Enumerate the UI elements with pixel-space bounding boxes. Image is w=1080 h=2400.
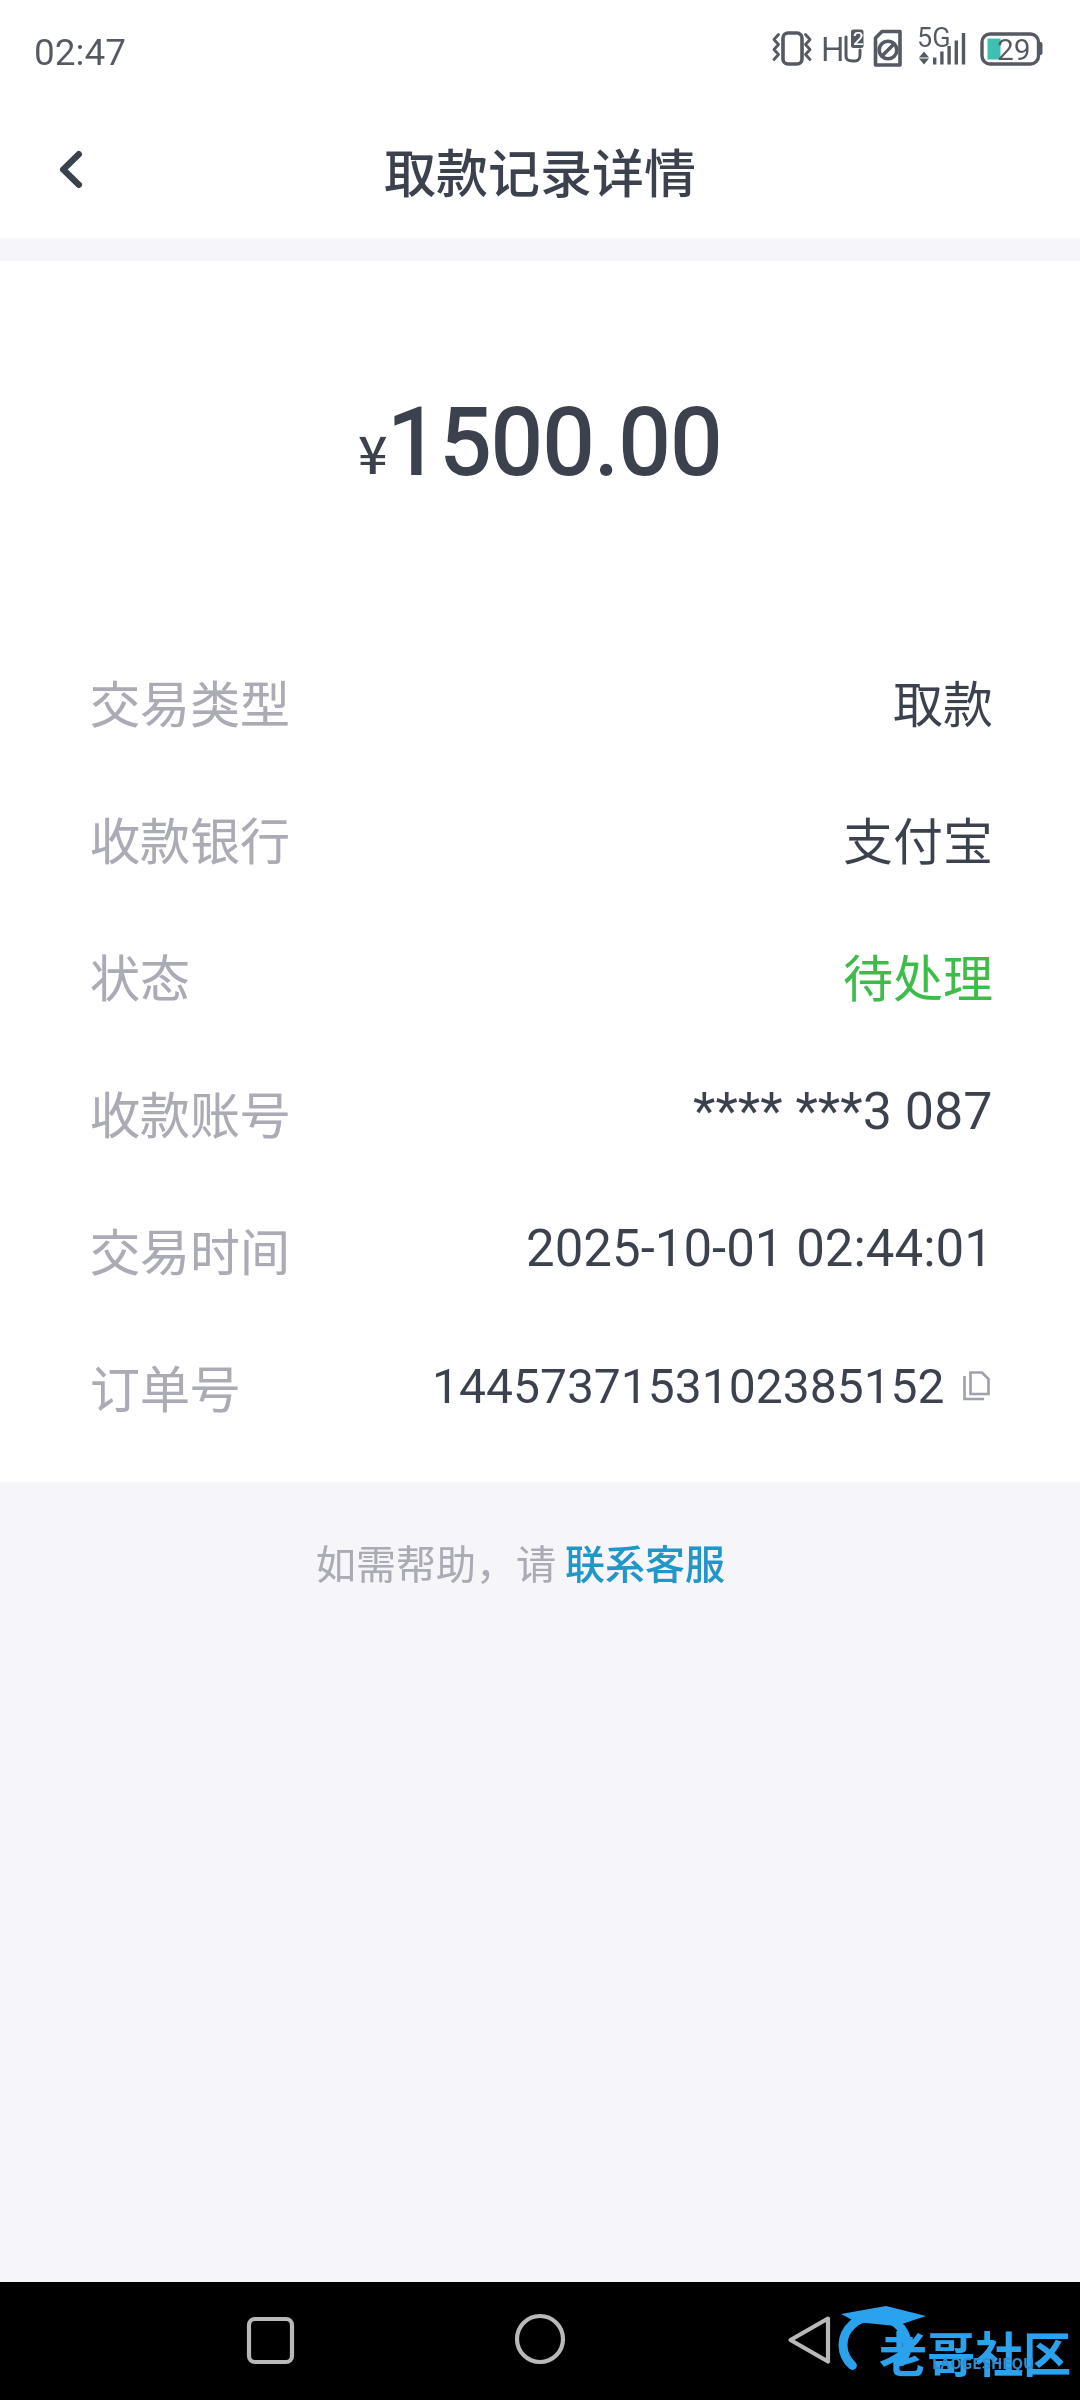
staticText: 2 — [853, 27, 864, 49]
staticText: 收款银行 — [90, 802, 290, 874]
staticText: 29 — [997, 32, 1031, 67]
staticText: 1445737153102385152 — [432, 1358, 945, 1414]
staticText: ¥1500.00 — [358, 389, 723, 497]
staticText: 交易时间 — [90, 1213, 290, 1285]
button[interactable]: 联系客服 — [565, 1533, 725, 1591]
staticText: 取款记录详情 — [384, 133, 697, 208]
button[interactable]: Recent apps — [222, 2292, 318, 2388]
staticText: 老哥社区 — [879, 2316, 1072, 2386]
staticText: 5G — [917, 22, 951, 54]
staticText: 状态 — [90, 939, 190, 1011]
staticText: 02:47 — [34, 31, 127, 74]
button[interactable]: Copy order number — [959, 1369, 993, 1403]
staticText: 交易类型 — [90, 665, 290, 737]
staticText: 待处理 — [843, 939, 993, 1011]
button[interactable]: Home — [492, 2291, 588, 2387]
staticText: 收款账号 — [90, 1076, 290, 1148]
staticText: ¥1500.00 — [358, 389, 723, 497]
staticText: 2025-10-01 02:44:01 — [526, 1219, 993, 1279]
staticText: 联系客服 — [565, 1533, 725, 1591]
staticText: **** ***3 087 — [693, 1081, 993, 1142]
staticText: 取款 — [893, 665, 993, 737]
staticText: 如需帮助，请 — [316, 1533, 565, 1591]
staticText: 订单号 — [90, 1350, 240, 1422]
staticText: ¥1500.00 — [358, 389, 723, 497]
staticText: LAOGESHEQU — [932, 2352, 1035, 2374]
staticText: 支付宝 — [843, 802, 993, 874]
button[interactable]: Back — [761, 2292, 857, 2388]
staticText: H — [821, 30, 845, 69]
button[interactable]: Back — [0, 100, 140, 238]
